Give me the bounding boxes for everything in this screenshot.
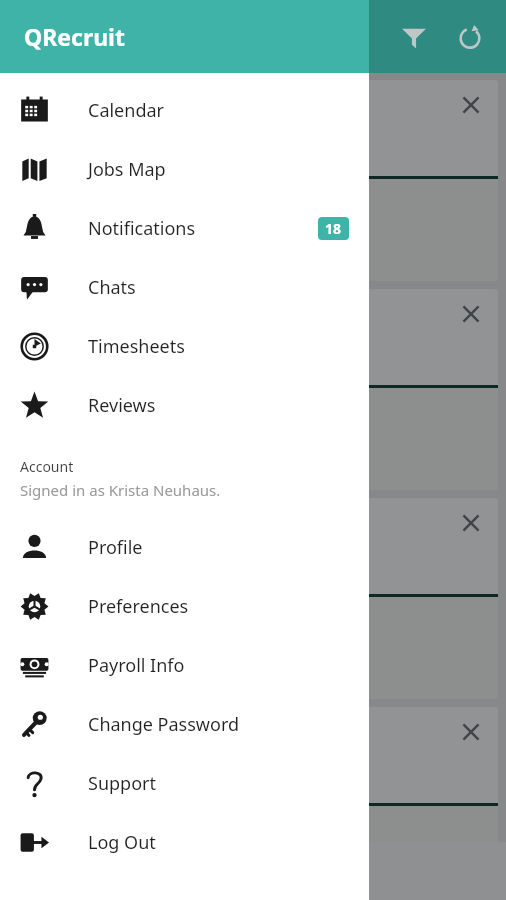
staticText: Your shift has been confirmed by [20,197,283,220]
staticText: Your shift has been confirmed by [20,824,283,847]
button[interactable]: Dismiss [452,713,490,751]
button[interactable]: Change Password [0,695,369,754]
staticText: Change Password [88,712,240,737]
button[interactable]: Timesheets [0,317,369,376]
button[interactable]: Dismiss [452,504,490,542]
staticText: Your shift has been confirmed by [20,615,283,638]
staticText: Yesterday at 1:41 PM [20,459,157,478]
staticText: Chats [88,275,136,300]
button[interactable]: Dismiss [8,498,498,699]
staticText: Jobs Map [88,157,166,182]
staticText: Profile [88,535,143,560]
button[interactable]: Dismiss [8,80,498,281]
staticText: Account [20,457,74,476]
staticText: Calendar [88,98,164,123]
staticText: Preferences [88,594,189,619]
button[interactable]: Filter [386,9,442,65]
button[interactable]: Reviews [0,376,369,435]
button[interactable]: Dismiss [452,295,490,333]
staticText: QRecruit [24,21,125,52]
button[interactable]: Preferences [0,577,369,636]
staticText: Support [88,771,156,796]
button[interactable]: Profile [0,518,369,577]
button[interactable]: Log Out [0,813,369,872]
button[interactable]: Calendar [0,81,369,140]
staticText: Yesterday at 1:39 PM [20,668,157,687]
button[interactable]: Support [0,754,369,813]
staticText: 18 [325,219,342,238]
staticText: Log Out [88,830,156,855]
staticText: Timesheets [88,334,185,359]
staticText: Your shift has been confirmed by [20,406,283,429]
button[interactable]: Jobs Map [0,140,369,199]
button[interactable]: Notifications [0,199,369,258]
button[interactable]: Chats [0,258,369,317]
staticText: Notifications [88,216,196,241]
button[interactable]: Dismiss [8,289,498,490]
button[interactable]: Refresh [442,9,498,65]
button[interactable]: Dismiss [8,707,498,900]
button[interactable]: My Profile [0,842,506,900]
staticText: Signed in as Krista Neuhaus. [20,480,221,500]
staticText: Payroll Info [88,653,185,678]
button[interactable]: Payroll Info [0,636,369,695]
button[interactable]: Dismiss [452,86,490,124]
staticText: Reviews [88,393,156,418]
